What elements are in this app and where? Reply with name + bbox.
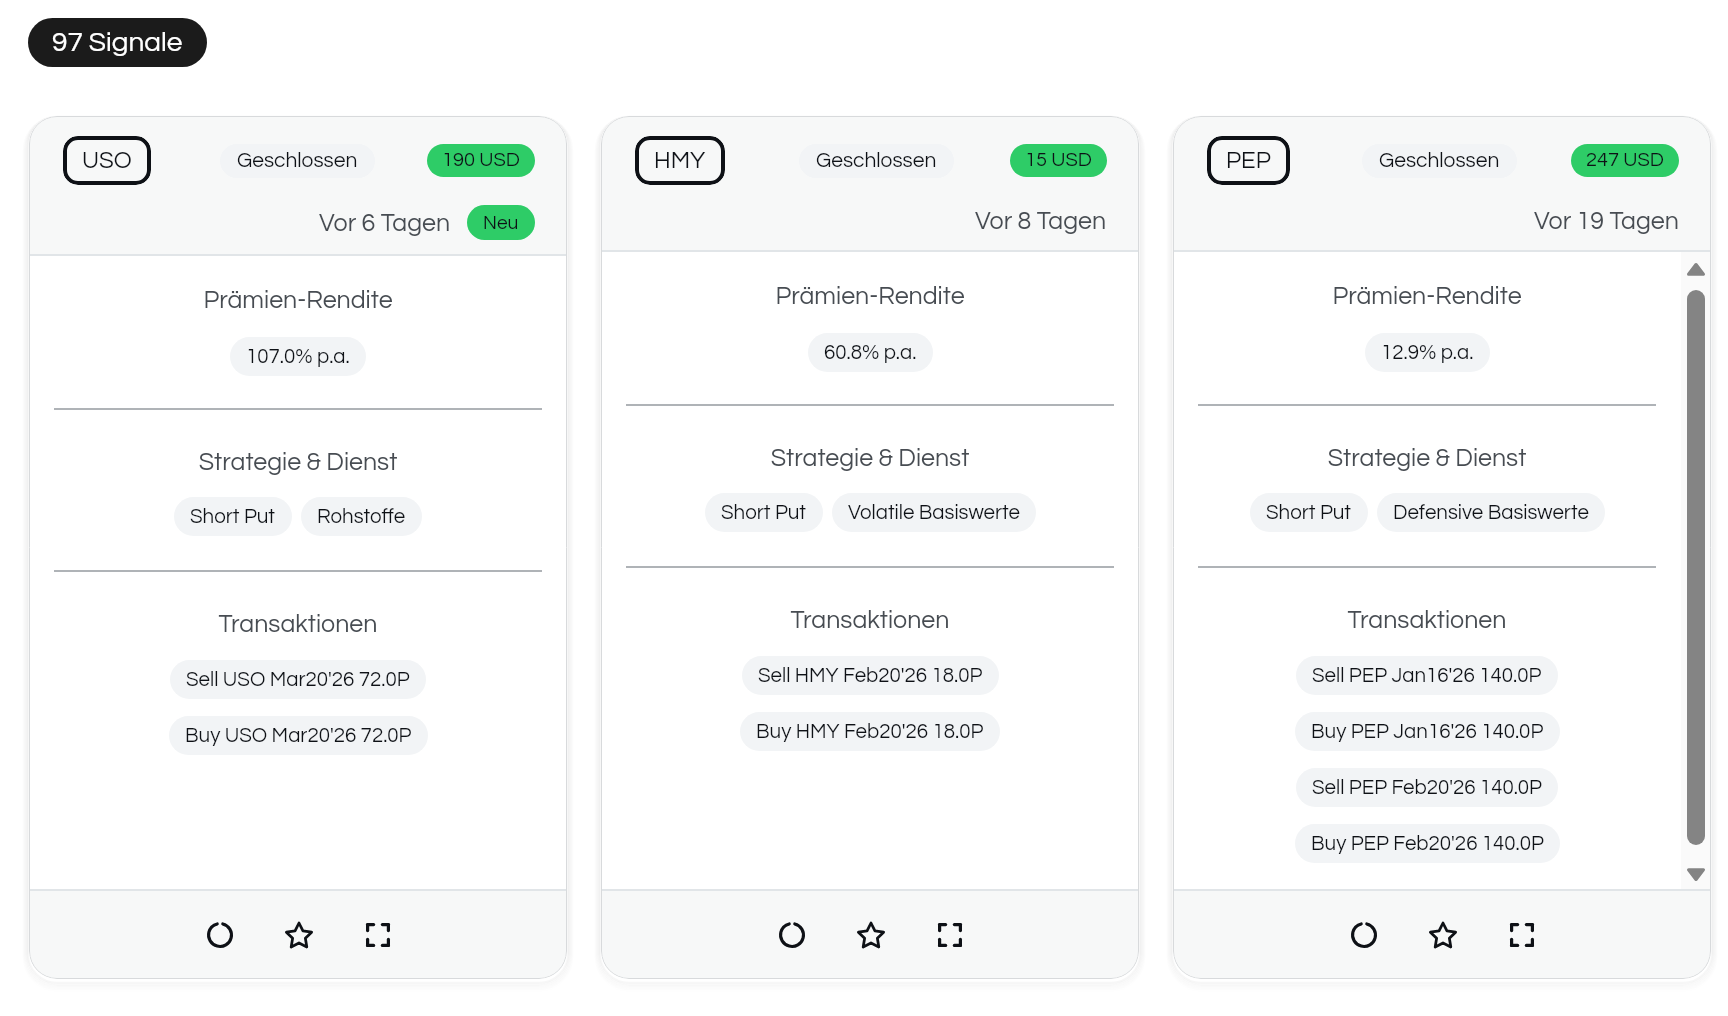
button[interactable]: Scrollleiste bbox=[1681, 252, 1711, 889]
staticText: Short Put bbox=[721, 502, 807, 523]
button[interactable]: USO bbox=[63, 136, 151, 185]
staticText: Short Put bbox=[1266, 502, 1352, 523]
staticText: Vor 19 Tagen bbox=[1534, 208, 1679, 234]
button[interactable]: Sell PEP Jan16'26 140.0P bbox=[1296, 656, 1558, 695]
staticText: Transaktionen bbox=[1173, 607, 1681, 633]
button[interactable]: Vollbild bbox=[354, 911, 402, 959]
staticText: Strategie & Dienst bbox=[1173, 445, 1681, 471]
button[interactable]: PEP bbox=[1173, 116, 1711, 979]
staticText: Prämien-Rendite bbox=[29, 287, 567, 313]
button[interactable]: Neu bbox=[467, 205, 535, 240]
button[interactable]: 12.9% p.a. bbox=[1365, 333, 1490, 372]
staticText: Buy USO Mar20'26 72.0P bbox=[185, 725, 412, 746]
staticText: Sell PEP Feb20'26 140.0P bbox=[1312, 777, 1542, 798]
button[interactable]: Volatile Basiswerte bbox=[832, 493, 1036, 532]
button[interactable]: 247 USD bbox=[1571, 144, 1679, 177]
other: Aktualisieren bbox=[1351, 922, 1377, 948]
button[interactable]: Favorit bbox=[845, 909, 897, 961]
staticText: 97 Signale bbox=[52, 28, 183, 57]
staticText: Geschlossen bbox=[816, 150, 937, 172]
staticText: Neu bbox=[483, 213, 519, 232]
other: Vergroessern bbox=[366, 923, 390, 947]
staticText: Volatile Basiswerte bbox=[848, 502, 1020, 523]
staticText: Vor 6 Tagen bbox=[319, 210, 451, 236]
staticText: HMY bbox=[654, 148, 706, 173]
button[interactable]: 15 USD bbox=[1010, 144, 1107, 177]
other: Aktualisieren bbox=[207, 922, 233, 948]
staticText: Prämien-Rendite bbox=[601, 283, 1139, 309]
staticText: Prämien-Rendite bbox=[1173, 283, 1681, 309]
staticText: Sell HMY Feb20'26 18.0P bbox=[758, 665, 983, 686]
button[interactable]: Sell PEP Feb20'26 140.0P bbox=[1296, 768, 1558, 807]
staticText: Transaktionen bbox=[601, 607, 1139, 633]
button[interactable]: Geschlossen bbox=[220, 144, 375, 178]
other: Favorit bbox=[285, 921, 313, 949]
staticText: Geschlossen bbox=[1379, 150, 1500, 172]
staticText: Sell PEP Jan16'26 140.0P bbox=[1312, 665, 1542, 686]
staticText: 107.0% p.a. bbox=[246, 346, 350, 367]
button[interactable]: Geschlossen bbox=[1362, 144, 1517, 178]
staticText: Buy PEP Feb20'26 140.0P bbox=[1311, 833, 1544, 854]
button[interactable]: Favorit bbox=[1417, 909, 1469, 961]
other: Aktualisieren bbox=[779, 922, 805, 948]
staticText: PEP bbox=[1226, 148, 1271, 173]
staticText: Rohstoffe bbox=[317, 506, 406, 527]
button[interactable]: 97 Signale bbox=[28, 18, 207, 67]
staticText: 15 USD bbox=[1025, 150, 1092, 171]
button[interactable]: Buy PEP Jan16'26 140.0P bbox=[1295, 712, 1560, 751]
button[interactable]: Sell USO Mar20'26 72.0P bbox=[170, 660, 426, 699]
staticText: 12.9% p.a. bbox=[1381, 342, 1474, 363]
button[interactable]: HMY bbox=[635, 136, 725, 185]
staticText: USO bbox=[82, 148, 132, 173]
staticText: Short Put bbox=[190, 506, 276, 527]
button[interactable]: Aktualisieren bbox=[767, 910, 817, 960]
button[interactable]: 190 USD bbox=[427, 144, 535, 177]
button[interactable]: Rohstoffe bbox=[301, 497, 422, 536]
staticText: 190 USD bbox=[442, 150, 520, 171]
button[interactable]: Vollbild bbox=[1498, 911, 1546, 959]
staticText: Buy PEP Jan16'26 140.0P bbox=[1311, 721, 1544, 742]
other: Favorit bbox=[1429, 921, 1457, 949]
button[interactable]: Short Put bbox=[174, 497, 292, 536]
button[interactable]: PEP bbox=[1207, 136, 1290, 185]
button[interactable]: Vollbild bbox=[926, 911, 974, 959]
button[interactable]: Short Put bbox=[1250, 493, 1368, 532]
staticText: Transaktionen bbox=[29, 611, 567, 637]
staticText: Sell USO Mar20'26 72.0P bbox=[186, 669, 410, 690]
button[interactable]: 107.0% p.a. bbox=[230, 337, 366, 376]
staticText: Defensive Basiswerte bbox=[1393, 502, 1589, 523]
button[interactable]: Aktualisieren bbox=[1339, 910, 1389, 960]
staticText: Strategie & Dienst bbox=[601, 445, 1139, 471]
staticText: Geschlossen bbox=[237, 150, 358, 172]
button[interactable]: Aktualisieren bbox=[195, 910, 245, 960]
button[interactable]: Geschlossen bbox=[799, 144, 954, 178]
button[interactable]: USO bbox=[29, 116, 567, 979]
button[interactable]: HMY bbox=[601, 116, 1139, 979]
button[interactable]: 60.8% p.a. bbox=[808, 333, 933, 372]
staticText: Vor 8 Tagen bbox=[975, 208, 1107, 234]
other: Favorit bbox=[857, 921, 885, 949]
staticText: Strategie & Dienst bbox=[29, 449, 567, 475]
button[interactable]: Favorit bbox=[273, 909, 325, 961]
staticText: 247 USD bbox=[1586, 150, 1664, 171]
button[interactable]: Short Put bbox=[705, 493, 823, 532]
button[interactable]: Sell HMY Feb20'26 18.0P bbox=[742, 656, 999, 695]
button[interactable]: Buy PEP Feb20'26 140.0P bbox=[1295, 824, 1560, 863]
button[interactable]: Defensive Basiswerte bbox=[1377, 493, 1605, 532]
button[interactable]: Buy USO Mar20'26 72.0P bbox=[169, 716, 428, 755]
button[interactable]: Buy HMY Feb20'26 18.0P bbox=[740, 712, 1000, 751]
staticText: 60.8% p.a. bbox=[824, 342, 917, 363]
staticText: Buy HMY Feb20'26 18.0P bbox=[756, 721, 984, 742]
other: Vergroessern bbox=[1510, 923, 1534, 947]
other: Vergroessern bbox=[938, 923, 962, 947]
